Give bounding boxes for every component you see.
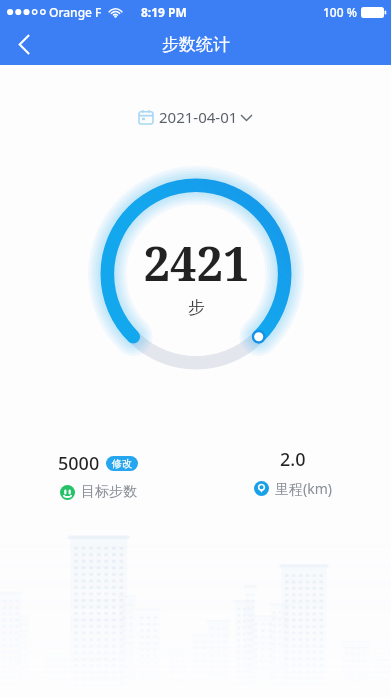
staticText: 修改 (112, 457, 132, 470)
button[interactable]: Back (0, 24, 48, 65)
staticText: Orange F (49, 4, 102, 20)
staticText: 100 % (323, 4, 357, 20)
button[interactable]: 5000 (54, 447, 142, 505)
staticText: 2421 (143, 231, 250, 295)
staticText: 2.0 (280, 447, 306, 472)
staticText: 2021-04-01 (159, 107, 238, 127)
staticText: 步 (188, 297, 205, 318)
staticText: 5000 (58, 451, 100, 476)
staticText: 8:19 PM (141, 4, 187, 20)
staticText: 目标步数 (81, 483, 137, 501)
button[interactable]: 2021-04-01 (133, 101, 258, 133)
staticText: 里程(km) (275, 479, 332, 498)
staticText: 步数统计 (162, 34, 230, 55)
